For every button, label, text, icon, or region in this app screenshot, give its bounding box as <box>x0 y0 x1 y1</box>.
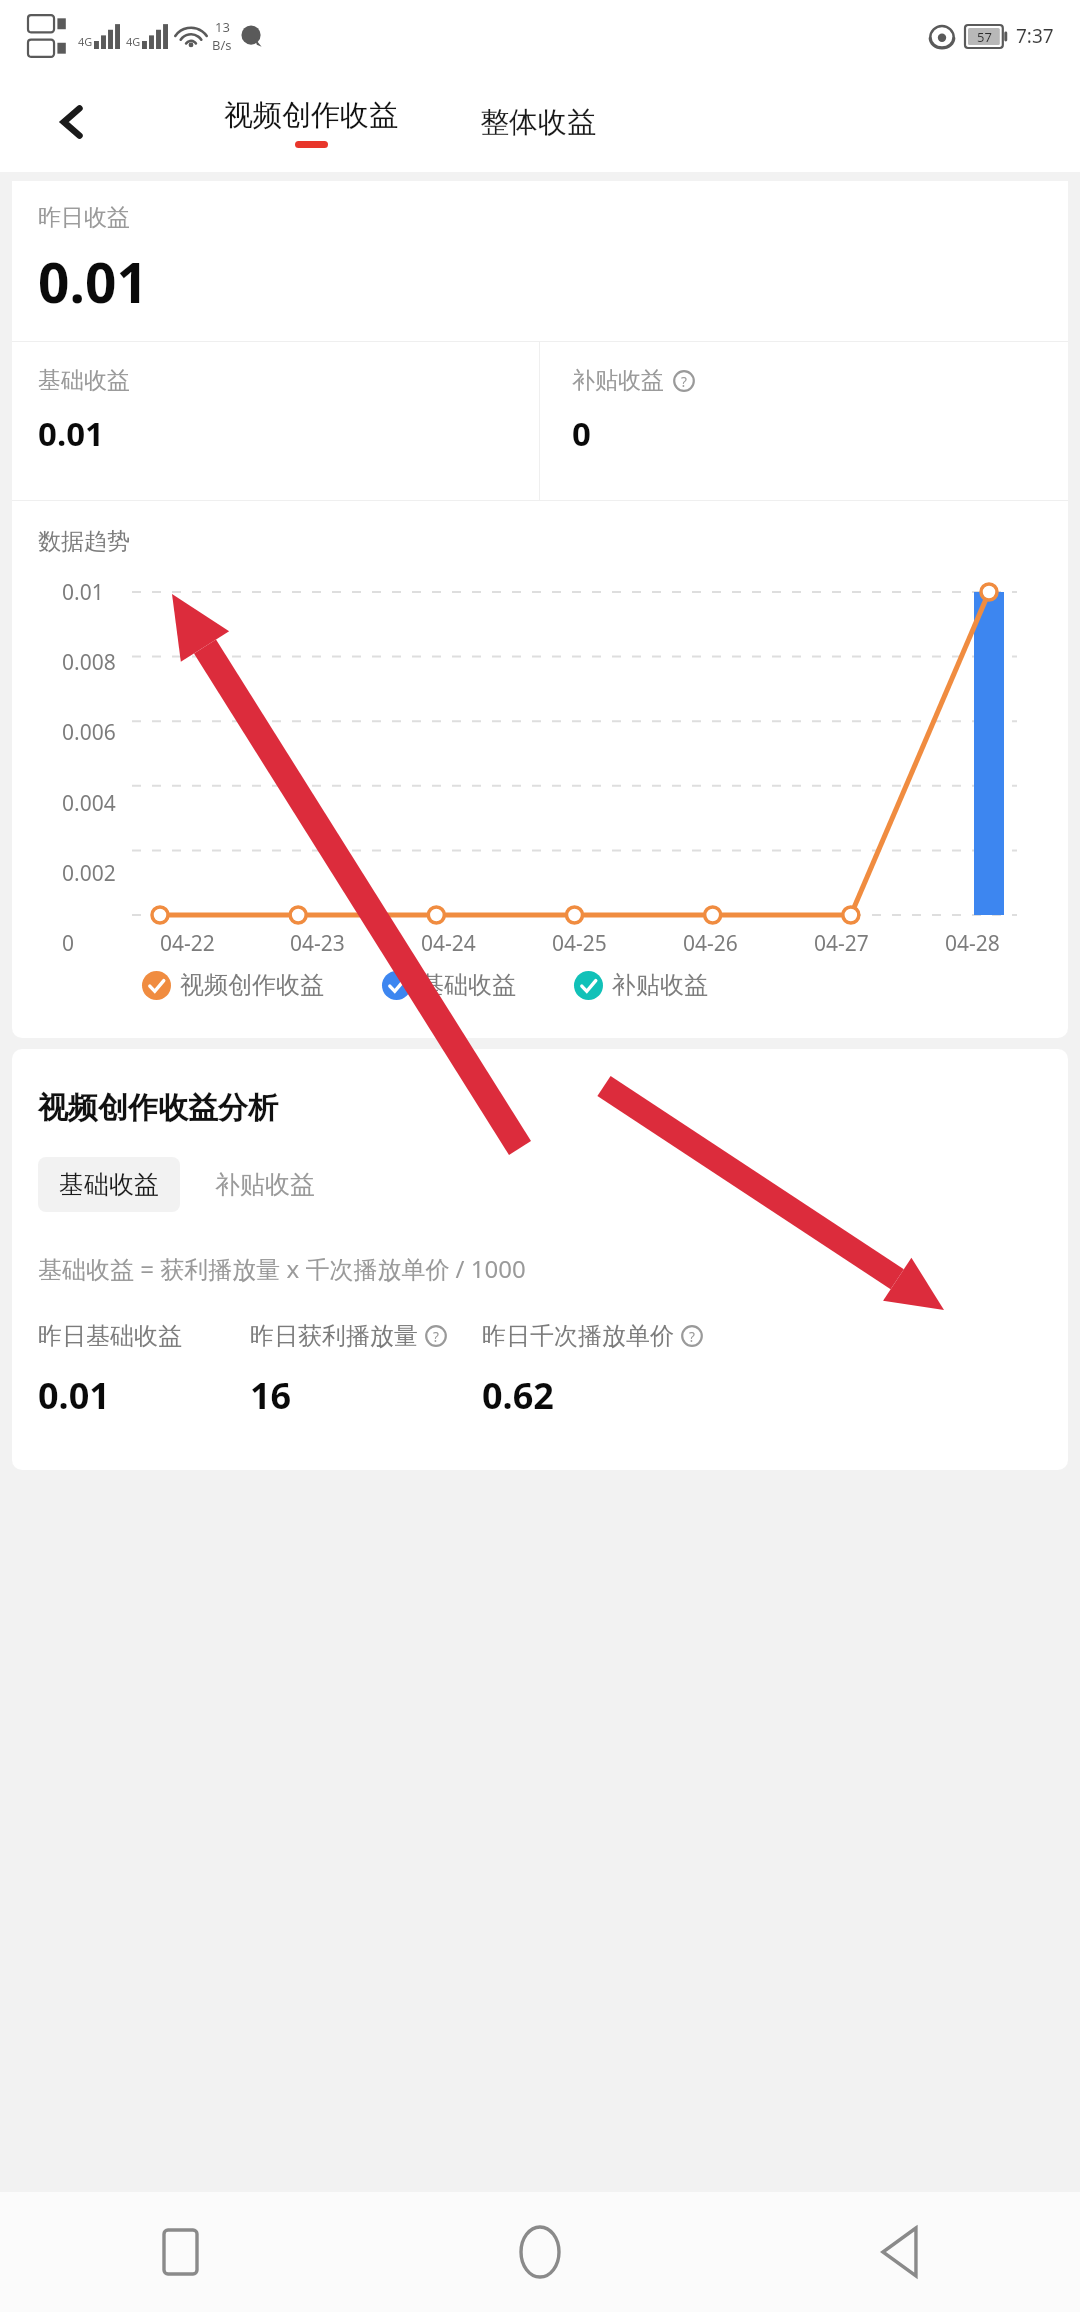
staticText: 补贴收益 <box>572 366 664 395</box>
button[interactable]: Back <box>36 86 108 158</box>
staticText: 0.004 <box>62 789 116 818</box>
button[interactable]: 基础收益 <box>38 1157 180 1212</box>
staticText: 0.006 <box>62 718 116 747</box>
staticText: 4G <box>126 34 141 49</box>
staticText: 0 <box>62 929 75 958</box>
button[interactable]: Home <box>360 2192 720 2312</box>
staticText: 7:37 <box>1016 23 1054 49</box>
staticText: 补贴收益 <box>215 1169 315 1200</box>
staticText: 04-22 <box>160 929 215 958</box>
staticText: 13 <box>215 18 230 36</box>
button[interactable]: 昨日千次播放单价 <box>482 1321 1042 1420</box>
button[interactable]: 基础收益 <box>382 970 516 1000</box>
staticText: 04-27 <box>814 929 869 958</box>
button[interactable]: 补贴收益 <box>574 970 708 1000</box>
staticText: 数据趋势 <box>38 527 130 556</box>
button[interactable]: 昨日获利播放量 <box>250 1321 482 1420</box>
staticText: 0.002 <box>62 859 116 888</box>
staticText: 视频创作收益 <box>180 970 324 1000</box>
staticText: 基础收益 <box>420 970 516 1000</box>
button[interactable]: 补贴收益 <box>194 1157 336 1212</box>
staticText: 补贴收益 <box>612 970 708 1000</box>
staticText: 04-28 <box>945 929 1000 958</box>
staticText: 昨日千次播放单价 <box>482 1321 674 1351</box>
staticText: 视频创作收益 <box>224 97 398 134</box>
staticText: B/s <box>212 36 232 54</box>
button[interactable]: 补贴收益 <box>540 342 1068 500</box>
staticText: ? <box>689 1327 695 1346</box>
staticText: 0.01 <box>38 244 148 319</box>
staticText: 16 <box>250 1371 292 1420</box>
staticText: 0 <box>572 411 591 456</box>
staticText: 0.01 <box>38 1371 110 1420</box>
button[interactable]: 基础收益 <box>12 342 539 500</box>
button[interactable]: 视频创作收益 <box>142 970 324 1000</box>
staticText: ? <box>433 1327 439 1346</box>
staticText: 昨日收益 <box>38 203 130 232</box>
staticText: 57 <box>977 28 992 46</box>
staticText: 04-24 <box>421 929 476 958</box>
button[interactable]: Back <box>720 2192 1080 2312</box>
staticText: 0.62 <box>482 1371 554 1420</box>
staticText: 昨日获利播放量 <box>250 1321 418 1351</box>
staticText: 04-26 <box>683 929 738 958</box>
staticText: 基础收益 <box>38 366 130 395</box>
button[interactable]: 昨日基础收益 <box>38 1321 250 1420</box>
staticText: 0.01 <box>38 411 104 456</box>
button[interactable]: 整体收益 <box>474 96 602 149</box>
staticText: 昨日基础收益 <box>38 1321 182 1351</box>
staticText: 04-25 <box>552 929 607 958</box>
staticText: 0.008 <box>62 648 116 677</box>
staticText: 基础收益 = 获利播放量 x 千次播放单价 / 1000 <box>38 1252 526 1285</box>
staticText: 整体收益 <box>480 104 596 141</box>
staticText: 04-23 <box>290 929 345 958</box>
staticText: 基础收益 <box>59 1169 159 1200</box>
staticText: 0.01 <box>62 578 104 607</box>
staticText: ? <box>681 372 687 391</box>
button[interactable]: Recents <box>0 2192 360 2312</box>
button[interactable]: 视频创作收益 <box>218 97 404 148</box>
staticText: 视频创作收益分析 <box>38 1089 278 1127</box>
staticText: 4G <box>78 34 93 49</box>
